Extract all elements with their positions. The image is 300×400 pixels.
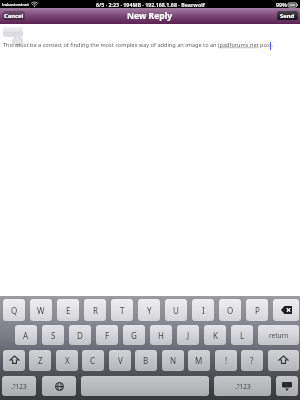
button[interactable]: .?123	[214, 376, 271, 396]
staticText: lmbasiowinet	[2, 2, 29, 7]
staticText: V	[118, 355, 123, 366]
button[interactable]: Paste	[3, 27, 23, 37]
button[interactable]: S	[42, 325, 64, 345]
button[interactable]: C	[82, 350, 104, 371]
button[interactable]: X	[56, 350, 78, 371]
button[interactable]: A	[15, 325, 37, 345]
button[interactable]: T	[111, 299, 133, 321]
button[interactable]: return	[258, 325, 299, 345]
button[interactable]: F	[96, 325, 118, 345]
button[interactable]: Hide keyboard	[276, 376, 298, 396]
button[interactable]: J	[177, 325, 199, 345]
button[interactable]: Switch keyboard	[42, 376, 76, 396]
button[interactable]: I	[192, 299, 214, 321]
staticText: I	[202, 305, 205, 316]
staticText: A	[23, 330, 29, 341]
button[interactable]: D	[69, 325, 91, 345]
staticText: New Reply	[127, 10, 173, 22]
button[interactable]: Cancel	[3, 11, 25, 20]
staticText: D	[77, 330, 83, 341]
staticText: Z	[38, 355, 43, 366]
button[interactable]: Backspace	[273, 299, 299, 321]
staticText: C	[90, 355, 96, 366]
button[interactable]: Send	[277, 11, 298, 20]
button[interactable]: Q	[3, 299, 25, 321]
button[interactable]: U	[165, 299, 187, 321]
button[interactable]: Z	[29, 350, 51, 371]
staticText: B	[143, 355, 149, 366]
button[interactable]: N	[162, 350, 184, 371]
button[interactable]: ?	[241, 350, 263, 371]
staticText: O	[227, 305, 234, 316]
staticText: Y	[147, 305, 152, 316]
button[interactable]: .?123	[2, 376, 36, 396]
button[interactable]: Y	[138, 299, 160, 321]
button[interactable]: M	[188, 350, 210, 371]
staticText: ?	[250, 355, 254, 366]
staticText: W	[37, 305, 45, 316]
staticText: P	[255, 305, 260, 316]
staticText: 6/5 · 2:23 · 194MB · 192.168.1.68 · Bear…	[96, 1, 205, 8]
staticText: X	[65, 355, 70, 366]
button[interactable]: Shift	[268, 350, 299, 371]
staticText: Cancel	[4, 12, 24, 20]
staticText: This must be a contest of finding the mo…	[3, 41, 274, 49]
staticText: return	[269, 331, 289, 340]
staticText: .?123	[235, 382, 251, 391]
staticText: N	[170, 355, 177, 366]
staticText: L	[240, 330, 245, 341]
button[interactable]: Shift	[3, 350, 25, 371]
staticText: H	[158, 330, 164, 341]
staticText: 99%	[276, 1, 287, 8]
staticText: U	[173, 305, 179, 316]
button[interactable]: B	[135, 350, 157, 371]
staticText: S	[51, 330, 56, 341]
staticText: M	[195, 355, 203, 366]
button[interactable]: L	[231, 325, 253, 345]
button[interactable]: G	[123, 325, 145, 345]
staticText: Q	[11, 305, 18, 316]
button[interactable]: K	[204, 325, 226, 345]
button[interactable]: O	[219, 299, 241, 321]
staticText: K	[213, 330, 218, 341]
staticText: T	[120, 305, 125, 316]
button[interactable]: Space	[81, 376, 209, 396]
button[interactable]: R	[84, 299, 106, 321]
button[interactable]: !	[215, 350, 237, 371]
staticText: F	[105, 330, 110, 341]
button[interactable]: E	[57, 299, 79, 321]
button[interactable]: W	[30, 299, 52, 321]
button[interactable]: H	[150, 325, 172, 345]
staticText: G	[131, 330, 137, 341]
button[interactable]: V	[109, 350, 131, 371]
staticText: J	[187, 330, 190, 341]
staticText: Send	[280, 12, 295, 20]
staticText: E	[66, 305, 71, 316]
staticText: .?123	[11, 382, 27, 391]
staticText: R	[93, 305, 98, 316]
staticText: !	[225, 355, 228, 366]
button[interactable]: P	[246, 299, 268, 321]
